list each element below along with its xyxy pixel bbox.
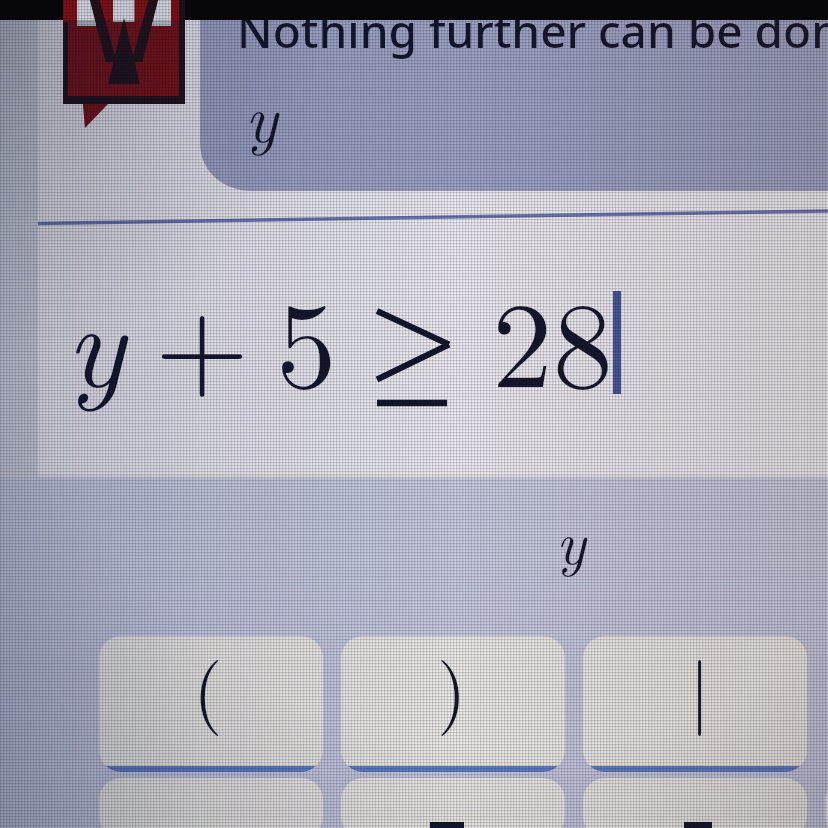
button[interactable]: App icon [63, 0, 185, 128]
button[interactable] [99, 778, 323, 828]
button[interactable] [99, 636, 323, 772]
button[interactable] [583, 778, 807, 828]
button[interactable] [341, 778, 565, 828]
button[interactable] [341, 636, 565, 772]
button[interactable] [825, 778, 828, 828]
button[interactable] [583, 636, 807, 772]
